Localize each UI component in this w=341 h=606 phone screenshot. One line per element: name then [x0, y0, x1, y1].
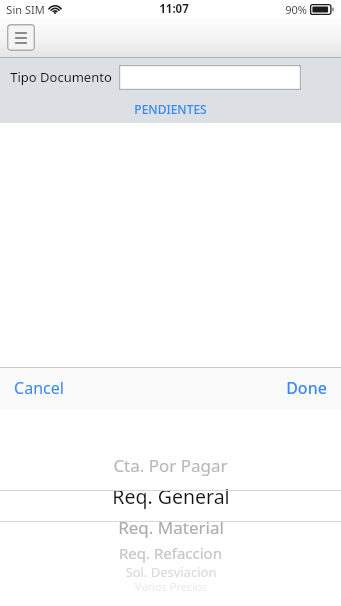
staticText: Cancel	[14, 377, 64, 399]
staticText: 11:07	[159, 1, 189, 17]
button[interactable]: Req. Refaccion	[0, 541, 341, 565]
button[interactable]: Cta. Por Pagar	[0, 452, 341, 479]
staticText: Req. General	[112, 483, 230, 510]
button[interactable]: PENDIENTES	[128, 99, 213, 119]
button[interactable]: Tipo Documento field	[119, 65, 301, 90]
staticText: 90%	[285, 2, 307, 17]
staticText: Sin SIM	[6, 2, 45, 17]
staticText: Req. Material	[118, 516, 224, 539]
button[interactable]: Req. Material	[0, 514, 341, 541]
button[interactable]: Cancel	[10, 371, 68, 405]
button[interactable]: Sol. Desviacion	[0, 561, 341, 582]
staticText: Cta. Por Pagar	[113, 454, 228, 477]
staticText: Tipo Documento	[10, 68, 112, 86]
staticText: Varios Precios	[135, 579, 207, 594]
staticText: Done	[286, 377, 327, 399]
button[interactable]: Done	[282, 371, 331, 405]
staticText: PENDIENTES	[134, 101, 207, 117]
button[interactable]: Menu	[7, 24, 35, 51]
staticText: Req. Refaccion	[119, 543, 222, 563]
button[interactable]: Req. General	[0, 481, 341, 512]
staticText: Sol. Desviacion	[125, 563, 217, 581]
